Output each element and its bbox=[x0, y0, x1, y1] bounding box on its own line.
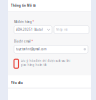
staticText: giao hàng hoàn tất bbox=[20, 63, 46, 67]
staticText: #DH-20251 (Auto) bbox=[16, 28, 43, 31]
staticText: tuyetanhnt@gmail.com bbox=[16, 47, 46, 51]
staticText: * bbox=[32, 40, 33, 43]
staticText: Mã đơn hàng bbox=[14, 20, 32, 24]
staticText: Lưu ý: hóa đơn chỉ được xuất sau khi bbox=[20, 59, 70, 63]
staticText: Thông tin Mô tả bbox=[11, 4, 36, 7]
staticText: Địa chỉ email bbox=[14, 40, 31, 43]
staticText: Nhập mã bbox=[56, 28, 67, 31]
staticText: * bbox=[33, 20, 34, 24]
staticText: Yêu cầu bbox=[11, 81, 23, 85]
